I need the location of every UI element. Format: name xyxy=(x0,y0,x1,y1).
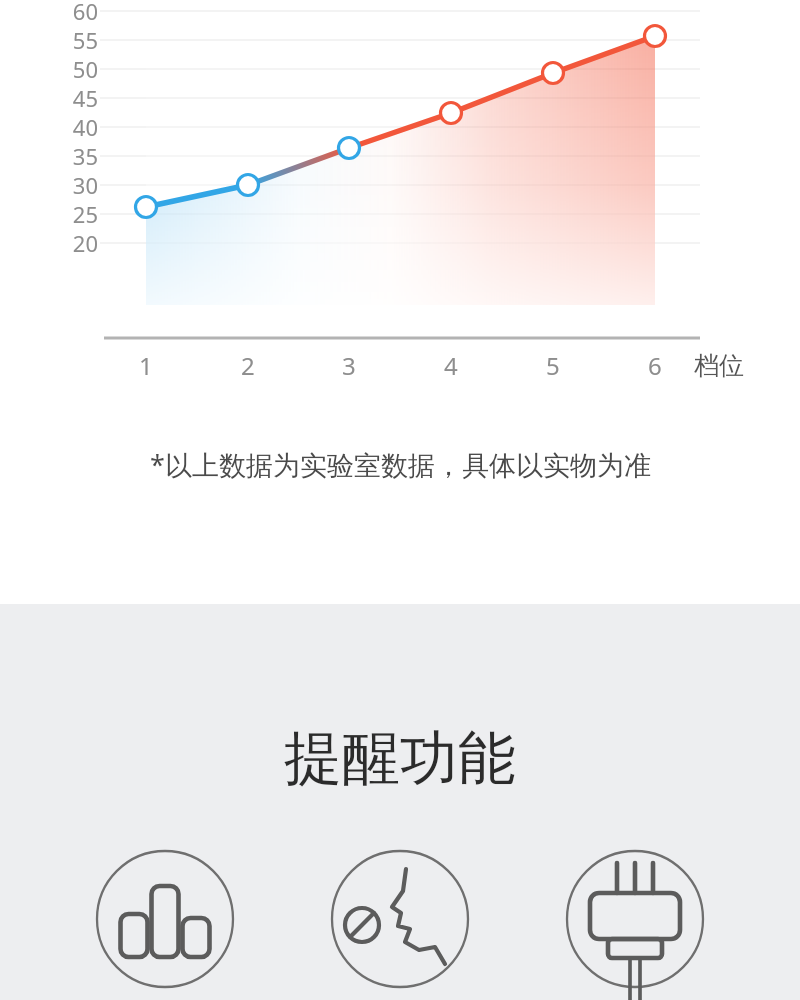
staticText: 3 xyxy=(342,349,356,382)
staticText: *以上数据为实验室数据，具体以实物为准 xyxy=(150,446,651,483)
staticText: 1 xyxy=(139,349,153,382)
staticText: 4 xyxy=(444,349,458,382)
staticText: 40 xyxy=(72,112,98,142)
staticText: 35 xyxy=(72,141,98,171)
staticText: 55 xyxy=(72,25,98,55)
staticText: 20 xyxy=(72,228,98,258)
staticText: 45 xyxy=(72,83,98,113)
staticText: 60 xyxy=(72,0,98,26)
button[interactable]: Odor removal xyxy=(330,849,470,989)
button[interactable]: Power plug reminder xyxy=(565,849,705,989)
staticText: 2 xyxy=(241,349,255,382)
button[interactable]: Air quality level xyxy=(95,849,235,989)
staticText: 提醒功能 xyxy=(284,722,516,795)
staticText: 50 xyxy=(72,54,98,84)
staticText: 30 xyxy=(72,170,98,200)
staticText: 档位 xyxy=(694,350,744,381)
staticText: 25 xyxy=(72,199,98,229)
staticText: 6 xyxy=(648,349,662,382)
staticText: 5 xyxy=(546,349,560,382)
